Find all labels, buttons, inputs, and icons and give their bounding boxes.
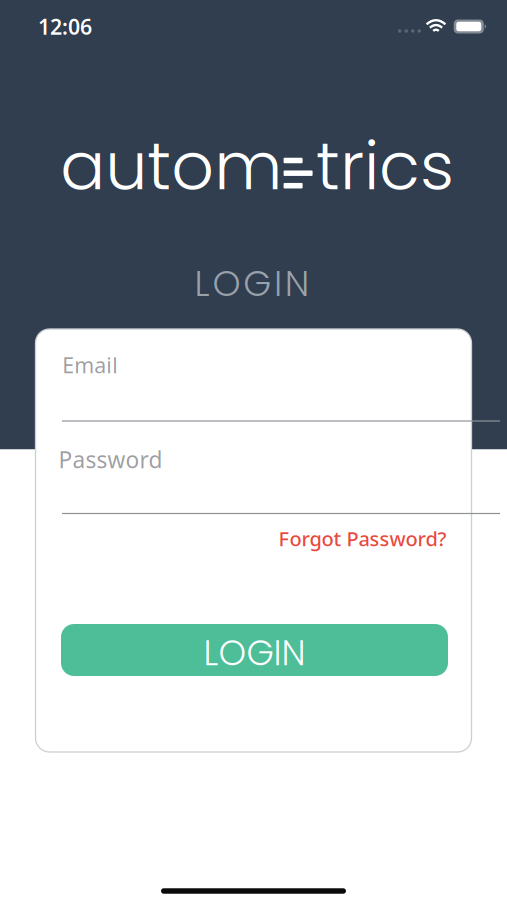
staticText: autom bbox=[60, 119, 282, 213]
staticText: 12:06 bbox=[38, 12, 92, 41]
staticText: LOGIN bbox=[195, 259, 310, 309]
button[interactable]: Email bbox=[62, 347, 500, 421]
button[interactable]: LOGIN bbox=[61, 624, 448, 676]
staticText: LOGIN bbox=[203, 628, 305, 678]
staticText: Email bbox=[62, 351, 118, 379]
staticText: Password bbox=[59, 444, 163, 474]
staticText: Forgot Password? bbox=[278, 525, 446, 552]
button[interactable]: Password bbox=[62, 442, 500, 514]
staticText: trics bbox=[316, 119, 454, 213]
button[interactable]: Forgot Password? bbox=[278, 525, 446, 552]
